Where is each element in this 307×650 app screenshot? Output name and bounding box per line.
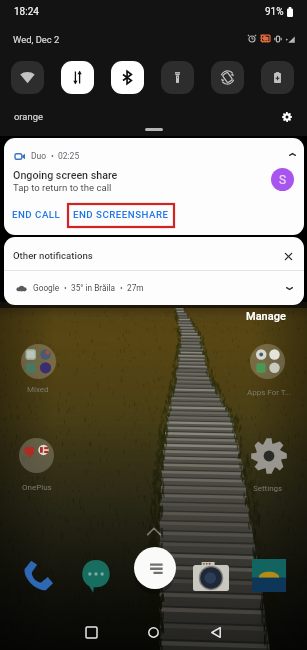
button[interactable]: Home [140,619,166,645]
staticText: OnePlus [22,483,52,492]
button[interactable]: Duo [4,138,304,235]
button[interactable]: Apps For Travel folder [250,344,285,379]
staticText: END SCREENSHARE [73,209,169,220]
button[interactable]: Dismiss all [280,248,296,264]
staticText: Wed, Dec 2 [13,34,60,45]
button[interactable]: Back [203,619,229,645]
staticText: END CALL [12,209,61,220]
button[interactable]: Recents [78,619,104,645]
button[interactable]: Auto-rotate [211,61,244,94]
button[interactable]: Mixed folder [21,344,56,379]
staticText: Tap to return to the call [13,182,112,193]
button[interactable]: Messages [82,559,110,593]
button[interactable]: OnePlus folder [19,438,54,473]
staticText: Duo [31,151,47,161]
staticText: 27m [127,283,144,293]
staticText: Other notifications [13,250,93,261]
staticText: Ongoing screen share [13,169,118,182]
staticText: Mixed [27,385,49,394]
staticText: 18:24 [14,6,39,18]
staticText: orange [14,111,43,122]
button[interactable]: Gallery [252,559,286,592]
staticText: S [279,173,287,187]
staticText: 02:25 [58,151,80,161]
button[interactable]: App drawer [134,547,176,589]
staticText: Google [33,283,60,293]
button[interactable]: Bluetooth [111,61,144,94]
button[interactable]: Flashlight [161,61,194,94]
button[interactable]: Collapse [285,147,299,161]
button[interactable]: Camera [193,562,229,591]
staticText: • [51,151,54,161]
button[interactable]: END SCREENSHARE [66,203,176,226]
button[interactable]: Phone [22,558,55,592]
staticText: 35° in Brăila [71,283,116,293]
other: Expand [282,281,296,295]
button[interactable]: Mobile data [61,61,94,94]
staticText: Apps For T... [247,388,292,397]
button[interactable]: Google [4,271,304,305]
button[interactable]: Wi-Fi [11,61,44,94]
staticText: Settings [253,484,283,493]
button[interactable]: Settings [251,438,287,474]
staticText: Manage [246,310,286,323]
staticText: • [64,283,67,293]
button[interactable]: Settings [279,109,294,124]
staticText: • [120,283,123,293]
button[interactable]: Battery saver [261,61,294,94]
button[interactable]: END CALL [6,203,67,226]
staticText: 91% [265,6,284,18]
